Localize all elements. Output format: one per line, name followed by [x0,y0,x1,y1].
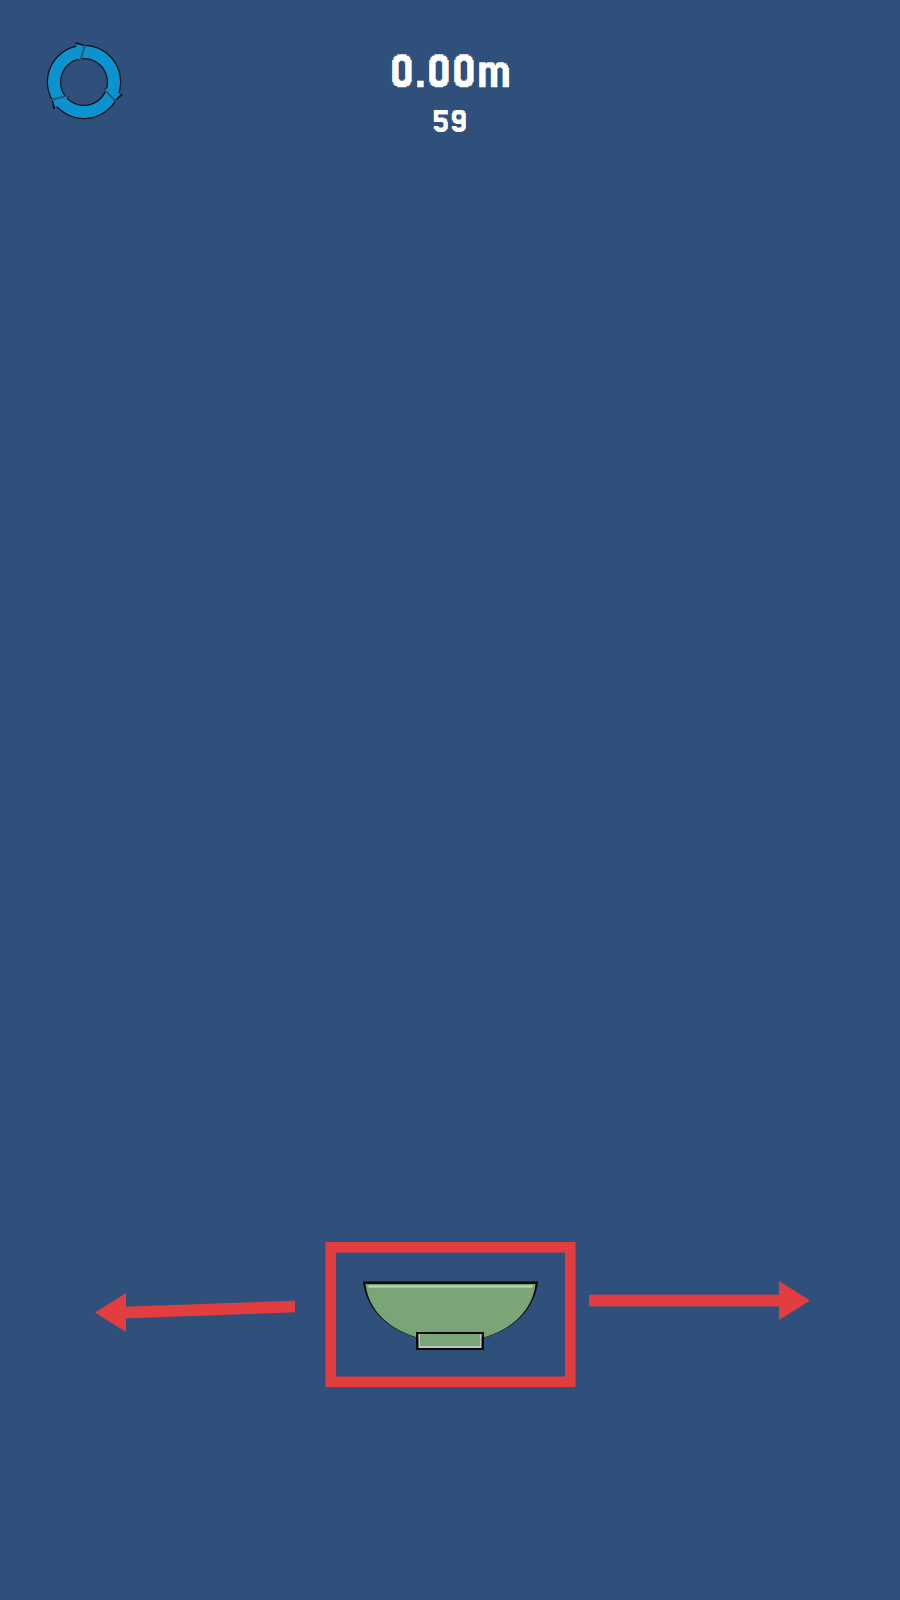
button[interactable]: Restart [36,34,132,130]
staticText: 0.00m [389,44,510,98]
staticText: 59 [432,103,468,139]
button[interactable]: Move left [95,1290,295,1334]
button[interactable]: Move right [589,1278,810,1322]
